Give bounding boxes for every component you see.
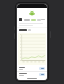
button[interactable]	[17, 72, 47, 77]
button[interactable]	[39, 67, 45, 70]
button[interactable]	[24, 19, 30, 21]
button[interactable]	[28, 29, 31, 31]
button[interactable]	[41, 19, 45, 20]
button[interactable]	[31, 19, 36, 21]
button[interactable]	[37, 19, 41, 21]
button[interactable]	[39, 73, 45, 76]
button[interactable]: App icon	[19, 18, 22, 21]
button[interactable]	[17, 66, 47, 71]
